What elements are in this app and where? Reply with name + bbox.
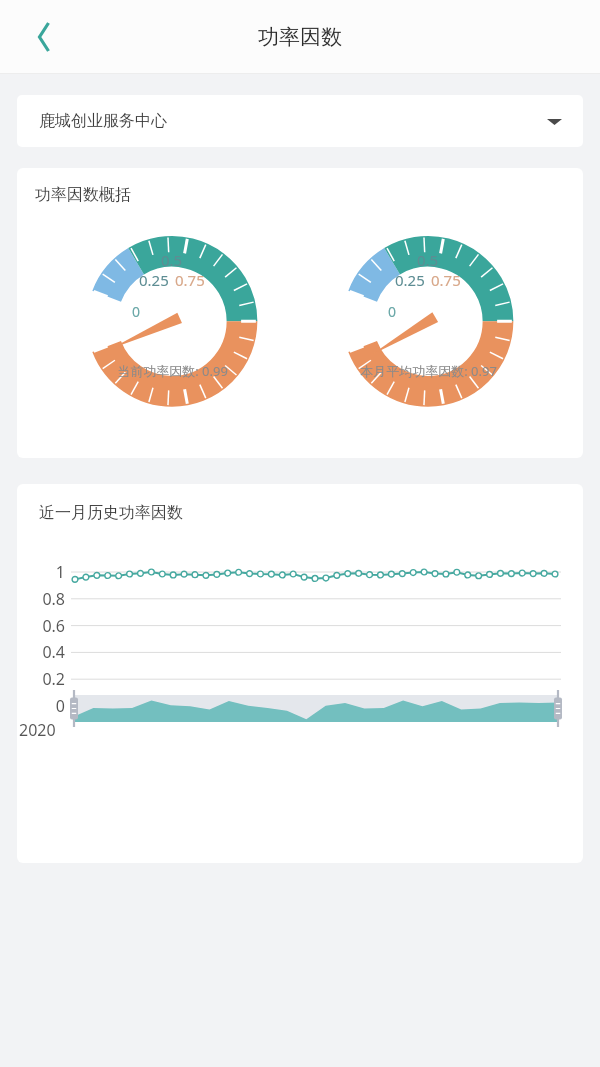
staticText: 0.5 bbox=[161, 250, 183, 270]
staticText: 功率因数概括 bbox=[35, 185, 131, 205]
button[interactable]: 鹿城创业服务中心 bbox=[17, 95, 583, 147]
staticText: 0.5 bbox=[417, 250, 439, 270]
staticText: 本月平均功率因数: 0.97 bbox=[360, 362, 497, 380]
staticText: 鹿城创业服务中心 bbox=[39, 111, 167, 131]
staticText: 当前功率因数: 0.99 bbox=[117, 362, 228, 380]
staticText: 0 bbox=[17, 695, 65, 717]
staticText: 1 bbox=[17, 561, 65, 583]
staticText: 0.2 bbox=[17, 668, 65, 690]
staticText: 0 bbox=[388, 302, 397, 321]
staticText: 0.75 bbox=[431, 270, 461, 290]
staticText: 0.8 bbox=[17, 588, 65, 610]
button[interactable]: Back bbox=[20, 13, 68, 61]
staticText: 0.6 bbox=[17, 615, 65, 637]
staticText: 0.75 bbox=[175, 270, 205, 290]
staticText: 0 bbox=[132, 302, 141, 321]
staticText: 功率因数 bbox=[258, 24, 342, 50]
staticText: 0.25 bbox=[139, 270, 169, 290]
staticText: 0.4 bbox=[17, 641, 65, 663]
staticText: 近一月历史功率因数 bbox=[39, 503, 183, 523]
staticText: 0.25 bbox=[395, 270, 425, 290]
staticText: 2020 bbox=[19, 719, 56, 741]
